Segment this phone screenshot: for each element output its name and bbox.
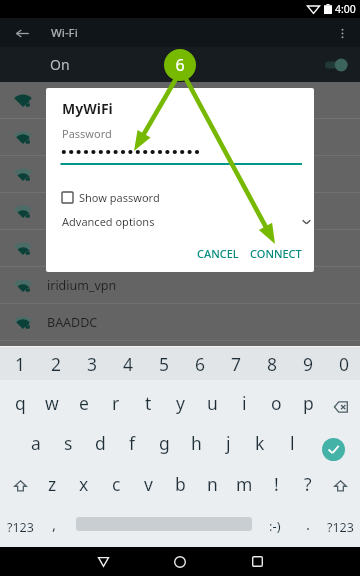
button[interactable] — [0, 230, 360, 267]
staticText: 8 — [267, 352, 278, 376]
button[interactable]: Advanced options — [62, 214, 312, 229]
button[interactable]: p — [292, 383, 324, 423]
button[interactable]: More options — [329, 20, 355, 46]
button[interactable]: j — [212, 423, 244, 463]
button[interactable]: 2 — [38, 347, 74, 380]
button[interactable]: i — [228, 383, 260, 423]
button[interactable]: 5 — [146, 347, 182, 380]
button[interactable]: Back — [82, 547, 124, 576]
staticText: r — [112, 391, 120, 415]
staticText: l — [290, 431, 295, 455]
button[interactable]: ?123 — [320, 505, 360, 549]
button[interactable]: d — [84, 423, 116, 463]
staticText: f — [129, 431, 136, 455]
button[interactable]: w — [36, 383, 68, 423]
button[interactable]: m — [228, 463, 260, 505]
staticText: , — [52, 514, 57, 534]
button[interactable]: x — [68, 463, 100, 505]
button[interactable] — [0, 119, 360, 156]
staticText: Show password — [79, 190, 160, 205]
button[interactable]: On — [0, 47, 360, 82]
staticText: MyWiFi — [62, 99, 113, 118]
staticText: ! — [274, 472, 279, 496]
button[interactable]: l — [276, 423, 308, 463]
staticText: c — [112, 472, 121, 496]
button[interactable]: Home — [159, 547, 201, 576]
button[interactable]: 4 — [110, 347, 146, 380]
staticText: i — [242, 391, 247, 415]
button[interactable]: t — [132, 383, 164, 423]
staticText: h — [191, 431, 202, 455]
staticText: m — [236, 472, 253, 496]
button[interactable]: Show password — [62, 190, 160, 205]
staticText: Wi-Fi — [51, 25, 78, 41]
staticText: v — [144, 472, 153, 496]
button[interactable]: CONNECT — [250, 246, 302, 261]
button[interactable]: 0 — [326, 347, 360, 380]
staticText: 7 — [231, 352, 242, 376]
staticText: w — [45, 391, 59, 415]
button[interactable]: q — [4, 383, 36, 423]
button[interactable]: BAADDC — [0, 304, 360, 341]
button[interactable]: s — [52, 423, 84, 463]
button[interactable]: . — [292, 502, 324, 546]
button[interactable]: Shift — [324, 465, 356, 507]
staticText: iridium_vpn — [47, 277, 117, 294]
button[interactable]: Back — [8, 19, 36, 47]
button[interactable]: CANCEL — [197, 246, 239, 261]
staticText: p — [303, 391, 314, 415]
button[interactable]: :-) — [259, 504, 291, 548]
staticText: ? — [304, 472, 312, 496]
staticText: 0 — [339, 352, 350, 376]
button[interactable]: 6 — [182, 347, 218, 380]
button[interactable]: b — [164, 463, 196, 505]
button[interactable]: Recents — [236, 547, 278, 576]
button[interactable]: a — [20, 423, 52, 463]
button[interactable]: 3 — [74, 347, 110, 380]
button[interactable] — [0, 193, 360, 230]
staticText: 5 — [159, 352, 170, 376]
button[interactable]: 7 — [218, 347, 254, 380]
button[interactable]: c — [100, 463, 132, 505]
staticText: x — [79, 472, 89, 496]
button[interactable]: r — [100, 383, 132, 423]
button[interactable]: f — [116, 423, 148, 463]
button[interactable]: iridium_vpn — [0, 267, 360, 304]
button[interactable]: 8 — [254, 347, 290, 380]
button[interactable]: o — [260, 383, 292, 423]
staticText: 3 — [87, 352, 98, 376]
staticText: k — [255, 431, 265, 455]
button[interactable]: v — [132, 463, 164, 505]
button[interactable]: y — [164, 383, 196, 423]
button[interactable]: ?123 — [0, 505, 40, 549]
button[interactable]: n — [196, 463, 228, 505]
staticText: 4 — [123, 352, 134, 376]
staticText: d — [95, 431, 106, 455]
button[interactable]: Enter — [312, 429, 354, 469]
staticText: :-) — [269, 517, 281, 535]
button[interactable]: k — [244, 423, 276, 463]
button[interactable]: ! — [260, 463, 292, 505]
staticText: t — [145, 391, 152, 415]
staticText: ?123 — [7, 519, 34, 536]
staticText: g — [159, 431, 170, 455]
button[interactable]: ? — [292, 463, 324, 505]
button[interactable]: Backspace — [324, 387, 358, 427]
button[interactable]: e — [68, 383, 100, 423]
staticText: a — [31, 431, 41, 455]
button[interactable] — [0, 156, 360, 193]
button[interactable]: 1 — [2, 347, 38, 380]
staticText: On — [50, 55, 70, 74]
button[interactable]: 9 — [290, 347, 326, 380]
button[interactable]: z — [36, 463, 68, 505]
staticText: CANCEL — [197, 246, 239, 261]
button[interactable] — [0, 82, 360, 119]
button[interactable]: u — [196, 383, 228, 423]
button[interactable]: , — [38, 502, 70, 546]
button[interactable]: g — [148, 423, 180, 463]
staticText: n — [207, 472, 218, 496]
button[interactable]: Shift — [4, 465, 36, 507]
button[interactable]: h — [180, 423, 212, 463]
staticText: ?123 — [327, 519, 354, 536]
button[interactable]: Space — [70, 502, 258, 546]
